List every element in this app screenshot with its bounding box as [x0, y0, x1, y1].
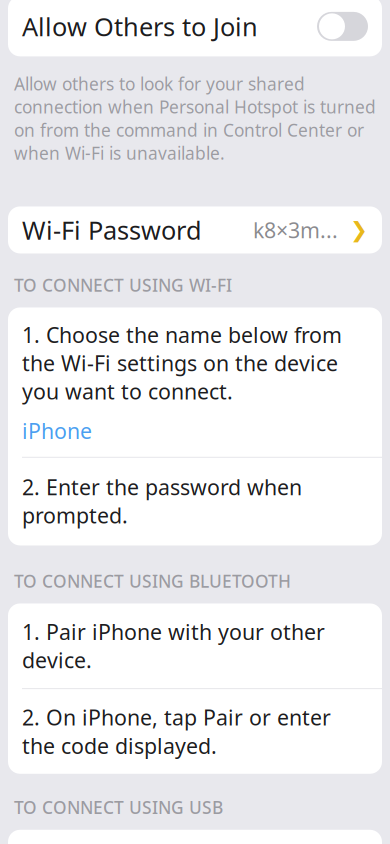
staticText: TO CONNECT USING WI-FI	[14, 273, 232, 296]
staticText: TO CONNECT USING USB	[14, 796, 223, 819]
staticText: 2. Enter the password when prompted.	[22, 473, 302, 529]
staticText: k8×3m...	[253, 216, 338, 244]
staticText: 2. On iPhone, tap Pair or enter the code…	[22, 703, 331, 760]
button[interactable]: Allow Others to Join	[317, 12, 368, 41]
button[interactable]: iPhone	[8, 405, 382, 457]
staticText: 1. Choose the name below from the Wi-Fi …	[22, 320, 342, 405]
staticText: iPhone	[22, 416, 92, 445]
staticText: Allow Others to Join	[22, 10, 258, 43]
staticText: 1. Pair iPhone with your other device.	[22, 617, 325, 674]
staticText: TO CONNECT USING BLUETOOTH	[14, 569, 291, 592]
staticText: Wi-Fi Password	[22, 213, 202, 247]
button[interactable]: Wi-Fi Password	[8, 206, 382, 253]
staticText: Allow others to look for your shared con…	[14, 72, 376, 164]
button[interactable]: Allow Others to Join	[8, 0, 382, 56]
staticText: ❯	[350, 218, 368, 242]
